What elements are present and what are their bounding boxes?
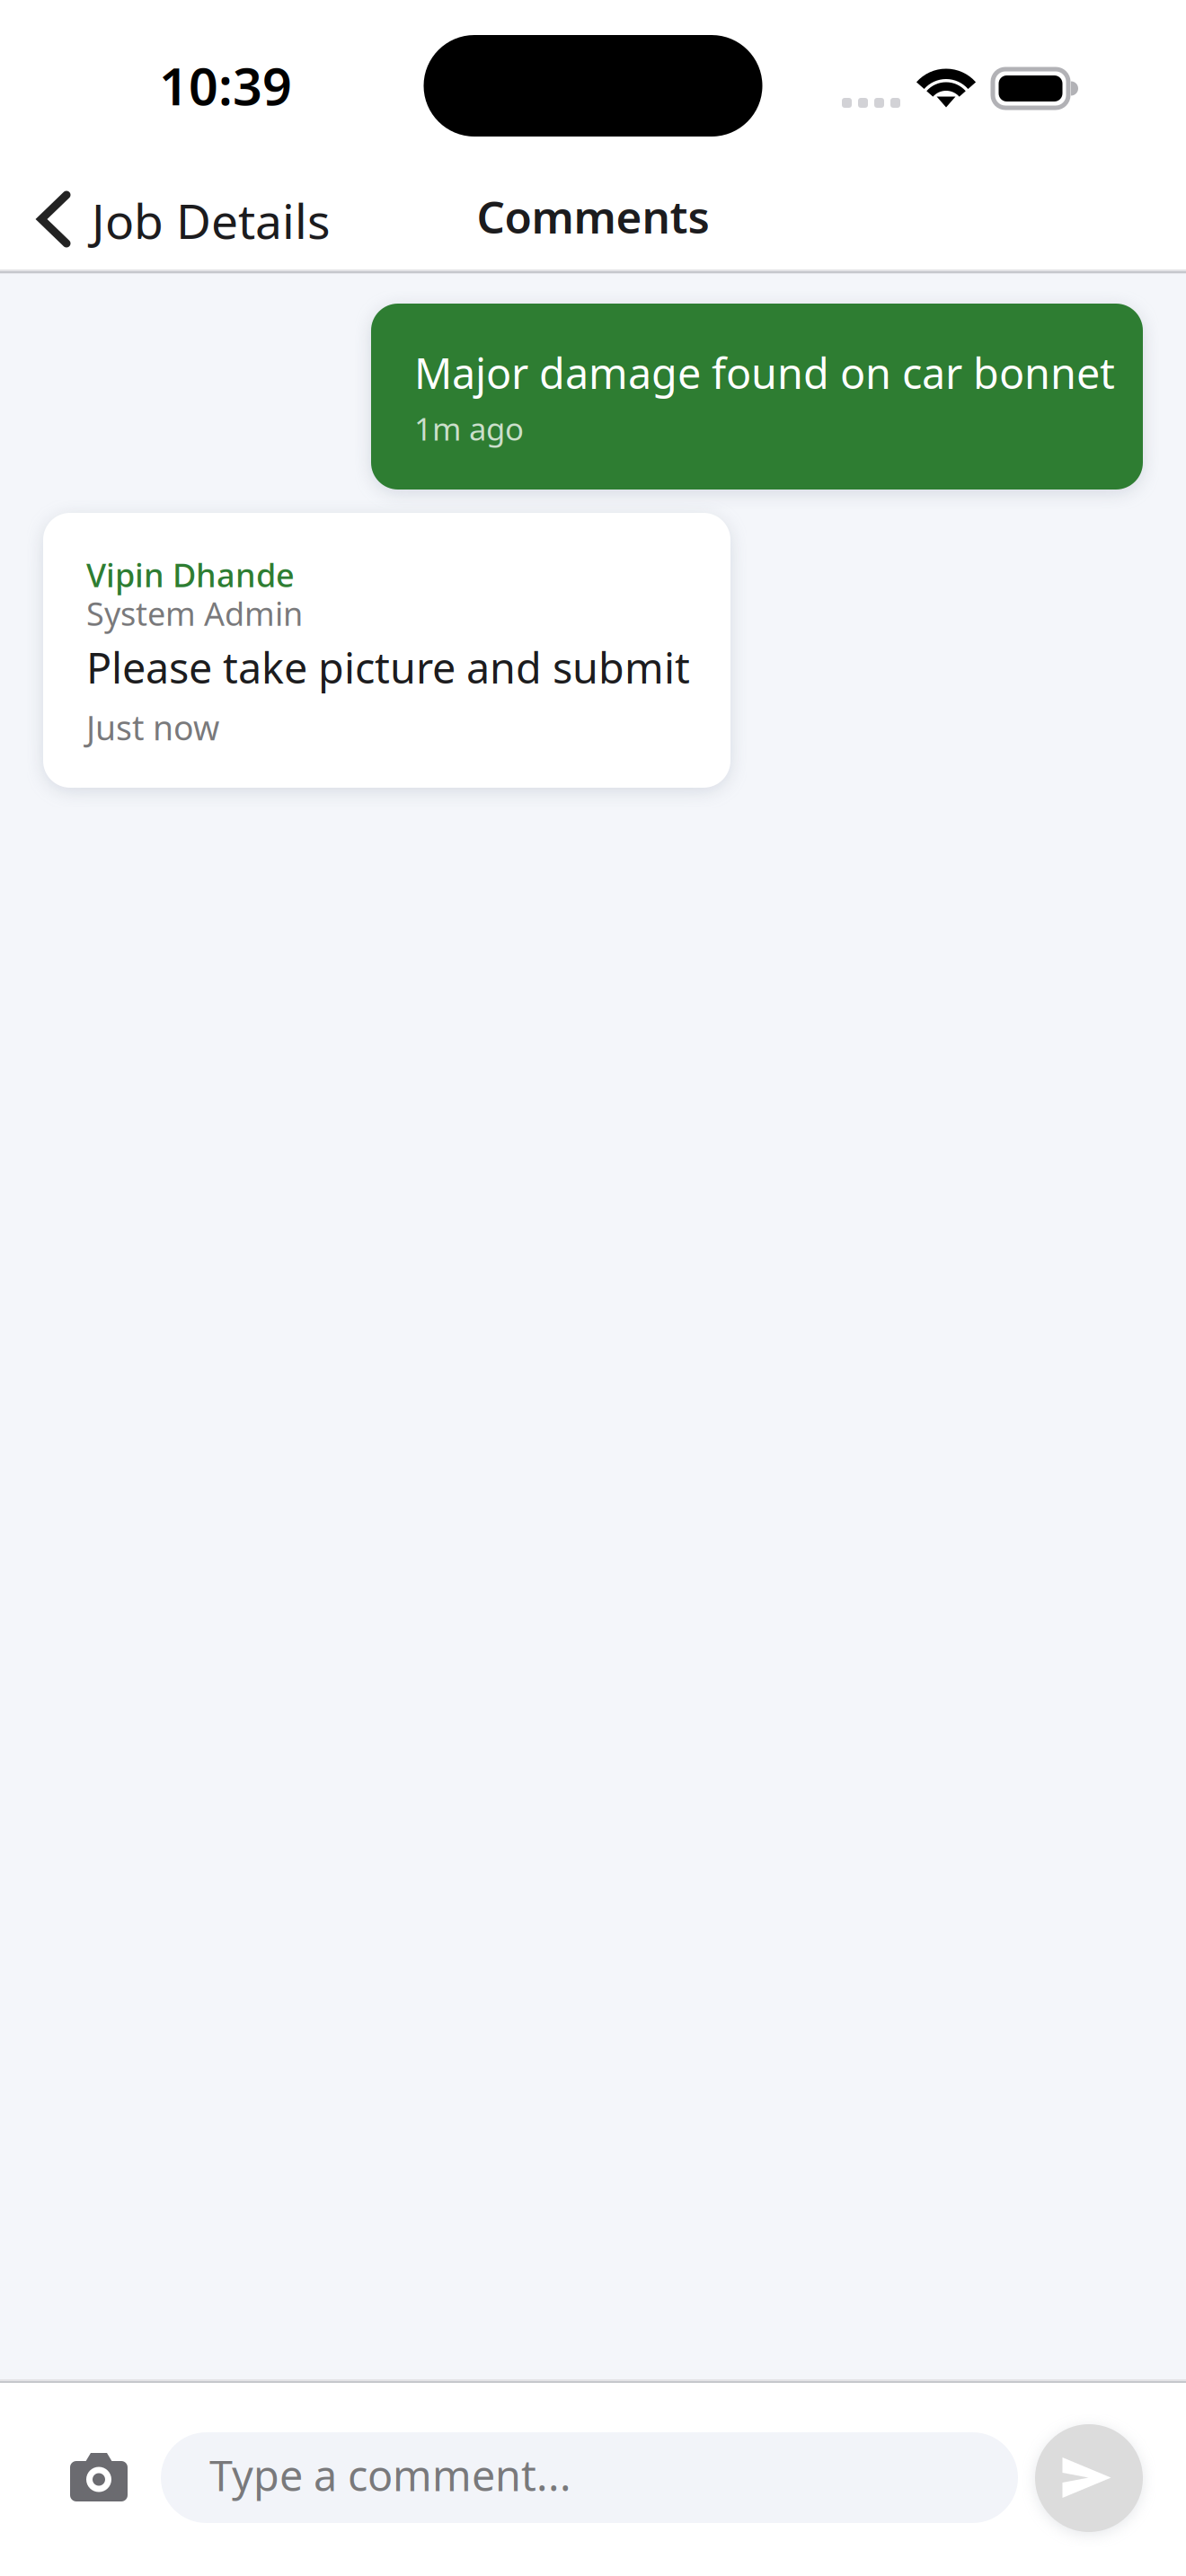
button[interactable]: Send [1035,2424,1143,2532]
staticText: 10:39 [159,51,292,120]
staticText: Just now [86,705,219,750]
staticText: 1m ago [414,408,524,449]
staticText: Major damage found on car bonnet [414,345,1115,401]
button[interactable]: Job Details [0,157,356,260]
staticText: System Admin [86,592,303,635]
staticText: Please take picture and submit [86,640,690,695]
staticText: Comments [477,187,709,246]
button[interactable]: Attach photo [0,2383,155,2530]
staticText: Vipin Dhande [86,553,295,596]
staticText: Type a comment... [209,2447,571,2503]
staticText: Job Details [92,189,331,252]
